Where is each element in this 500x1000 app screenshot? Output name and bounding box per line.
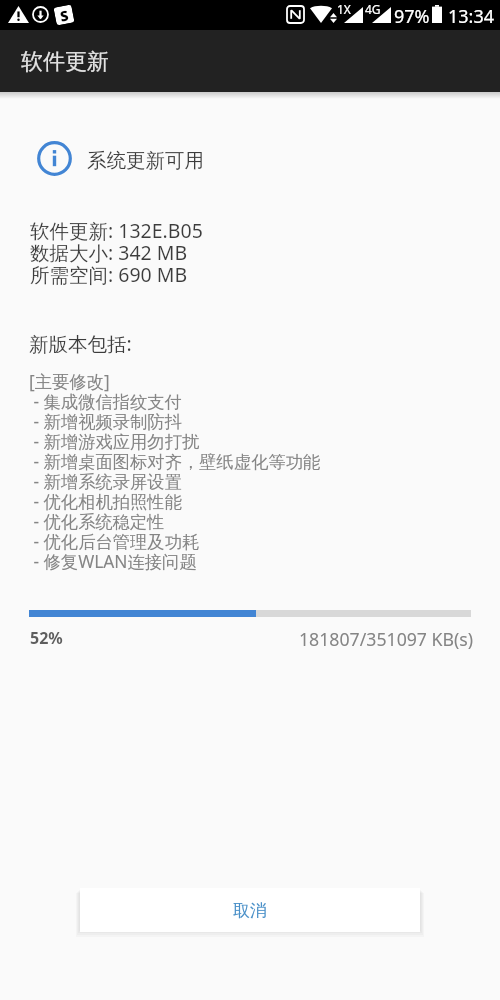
staticText: 4G <box>365 1 381 17</box>
staticText: 1X <box>337 1 351 17</box>
other: Mobile signal <box>372 7 391 23</box>
other: Information <box>37 141 72 176</box>
staticText: 13:34 <box>448 4 495 29</box>
staticText: 181807/351097 KB(s) <box>299 627 474 651</box>
staticText: S <box>58 5 71 25</box>
other: Downloading <box>32 6 49 23</box>
staticText: 新版本包括: <box>29 330 132 357</box>
staticText: 52% <box>30 627 63 649</box>
staticText: 数据大小: 342 MB <box>30 239 188 266</box>
staticText: 软件更新 <box>21 48 109 76</box>
staticText: [主要修改] - 集成微信指纹支付 - 新增视频录制防抖 - 新增游戏应用勿打扰… <box>29 370 321 574</box>
button[interactable]: 取消 <box>80 888 420 932</box>
other: Warning <box>8 6 29 23</box>
other: Wi-Fi <box>310 5 332 23</box>
other: Mobile signal <box>344 7 363 23</box>
staticText: 系统更新可用 <box>87 148 204 173</box>
staticText: 软件更新: 132E.B05 <box>30 217 203 244</box>
other: App notification <box>53 4 74 25</box>
staticText: 取消 <box>233 900 267 921</box>
staticText: 所需空间: 690 MB <box>30 261 188 288</box>
other: Battery 97 percent <box>432 5 442 23</box>
other: NFC enabled <box>287 6 304 23</box>
staticText: 97% <box>394 4 430 29</box>
